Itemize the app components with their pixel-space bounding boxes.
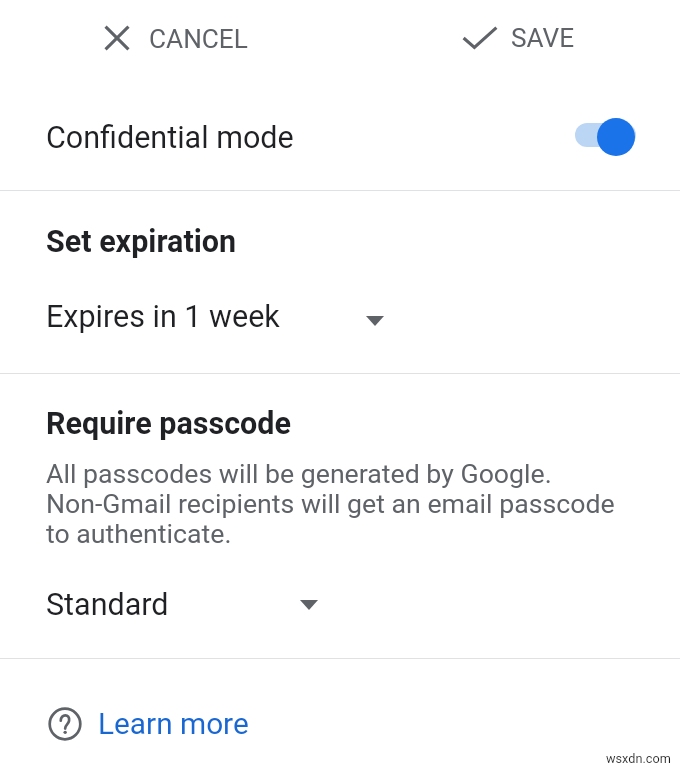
button[interactable]: Expires in 1 week	[38, 293, 392, 341]
other: Cancel	[104, 25, 130, 51]
other: Help	[48, 707, 82, 741]
staticText: Set expiration	[46, 224, 237, 260]
staticText: Expires in 1 week	[46, 299, 280, 335]
button[interactable]: Standard	[38, 581, 326, 629]
button[interactable]: Help	[39, 697, 258, 750]
staticText: All passcodes will be generated by Googl…	[46, 458, 615, 549]
staticText: CANCEL	[149, 24, 248, 55]
button[interactable]: Confidential mode	[0, 80, 680, 190]
other: Save	[462, 26, 498, 49]
button[interactable]: Save	[454, 14, 585, 63]
staticText: Learn more	[98, 706, 249, 741]
button[interactable]: Cancel	[96, 15, 258, 64]
staticText: SAVE	[511, 23, 575, 54]
button[interactable]: Confidential mode toggle, on	[571, 112, 639, 160]
staticText: Confidential mode	[46, 120, 294, 156]
staticText: Standard	[46, 587, 169, 623]
staticText: Require passcode	[46, 406, 292, 442]
staticText: wsxdn.com	[606, 751, 671, 766]
